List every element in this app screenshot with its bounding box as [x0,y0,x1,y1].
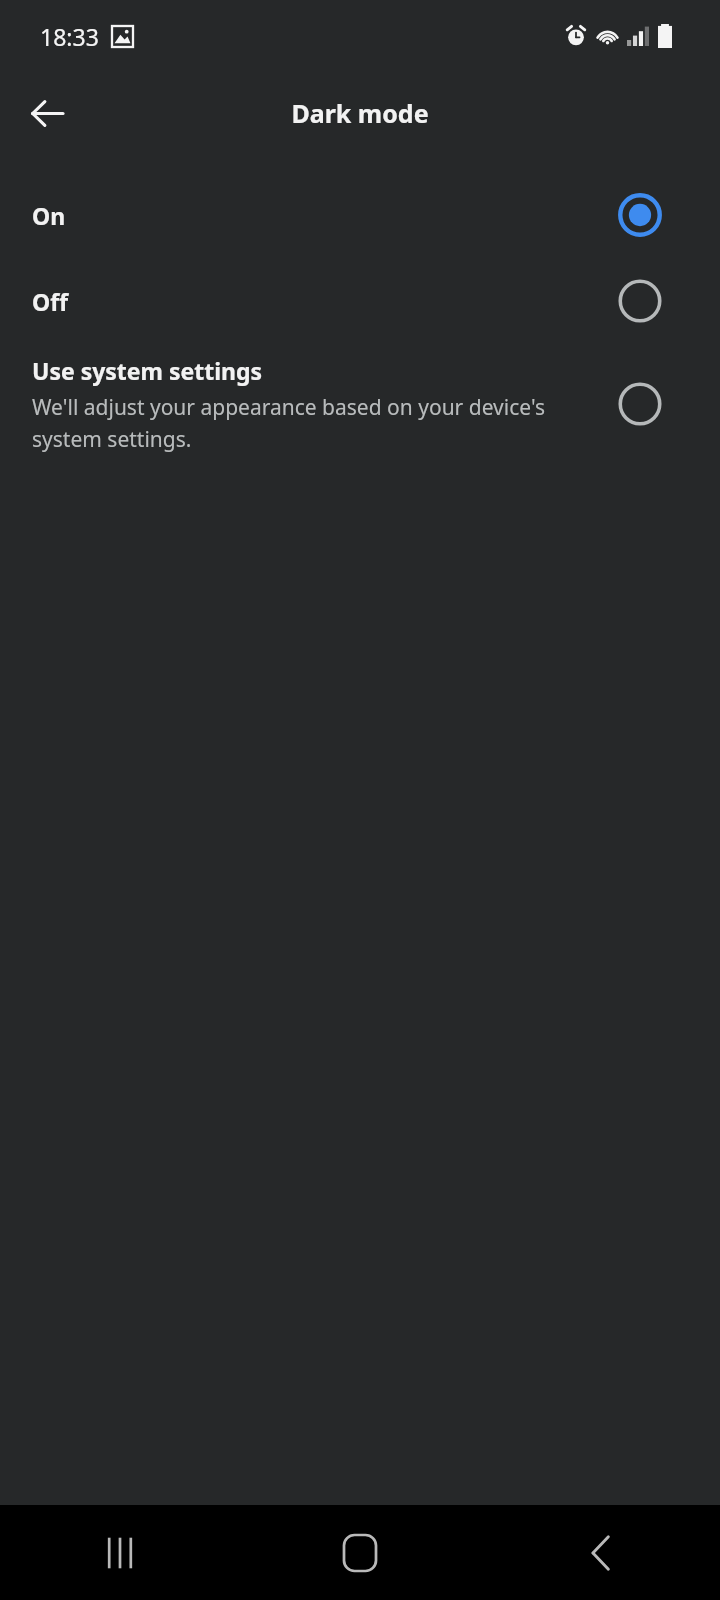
button[interactable]: Off [0,258,720,344]
button[interactable]: Back [480,1505,720,1600]
button[interactable]: On [0,172,720,258]
button[interactable]: Back [16,82,78,144]
staticText: Use system settings [32,355,263,386]
button[interactable]: Home [240,1505,480,1600]
staticText: 18:33 [40,21,99,52]
staticText: Dark mode [291,96,429,130]
button[interactable]: Use system settings [0,344,720,464]
button[interactable]: Use system settings [614,378,666,430]
button[interactable]: Off [614,275,666,327]
staticText: Off [32,286,68,317]
button[interactable]: On selected [614,189,666,241]
staticText: On [32,200,66,231]
staticText: We'll adjust your appearance based on yo… [32,393,568,453]
button[interactable]: Recent apps [0,1505,240,1600]
